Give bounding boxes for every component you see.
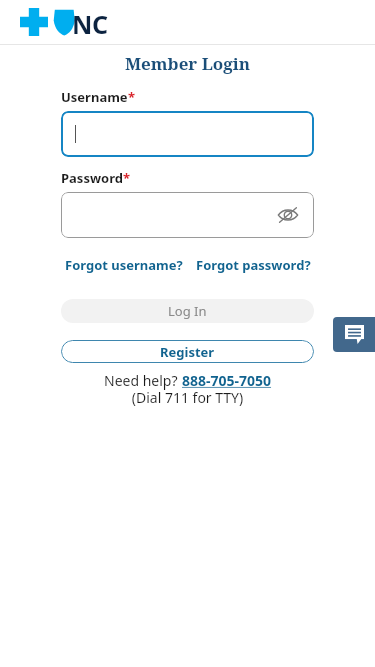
staticText: Forgot password? bbox=[196, 256, 311, 274]
staticText: Member Login bbox=[0, 52, 375, 75]
staticText: Register bbox=[160, 343, 215, 361]
button[interactable]: Chat bbox=[333, 317, 375, 352]
staticText: Password bbox=[61, 169, 123, 187]
staticText: Forgot username? bbox=[65, 256, 183, 274]
button[interactable] bbox=[61, 111, 314, 157]
staticText: Need help? bbox=[104, 371, 182, 390]
staticText: * bbox=[128, 88, 136, 106]
button[interactable]: Forgot username? bbox=[63, 256, 185, 274]
staticText: * bbox=[123, 169, 131, 187]
staticText: Username bbox=[61, 88, 128, 106]
button[interactable]: Register bbox=[61, 340, 314, 363]
staticText: (Dial 711 for TTY) bbox=[0, 388, 375, 407]
button[interactable]: Show password bbox=[61, 192, 314, 238]
staticText: Log In bbox=[168, 302, 207, 320]
button[interactable]: Show password bbox=[276, 203, 300, 227]
staticText: NC bbox=[72, 7, 108, 41]
button[interactable]: Forgot password? bbox=[194, 256, 313, 274]
button[interactable]: Log In bbox=[61, 299, 314, 323]
staticText: 888-705-7050 bbox=[182, 371, 272, 390]
button[interactable]: Call 888-705-7050 bbox=[182, 371, 272, 390]
